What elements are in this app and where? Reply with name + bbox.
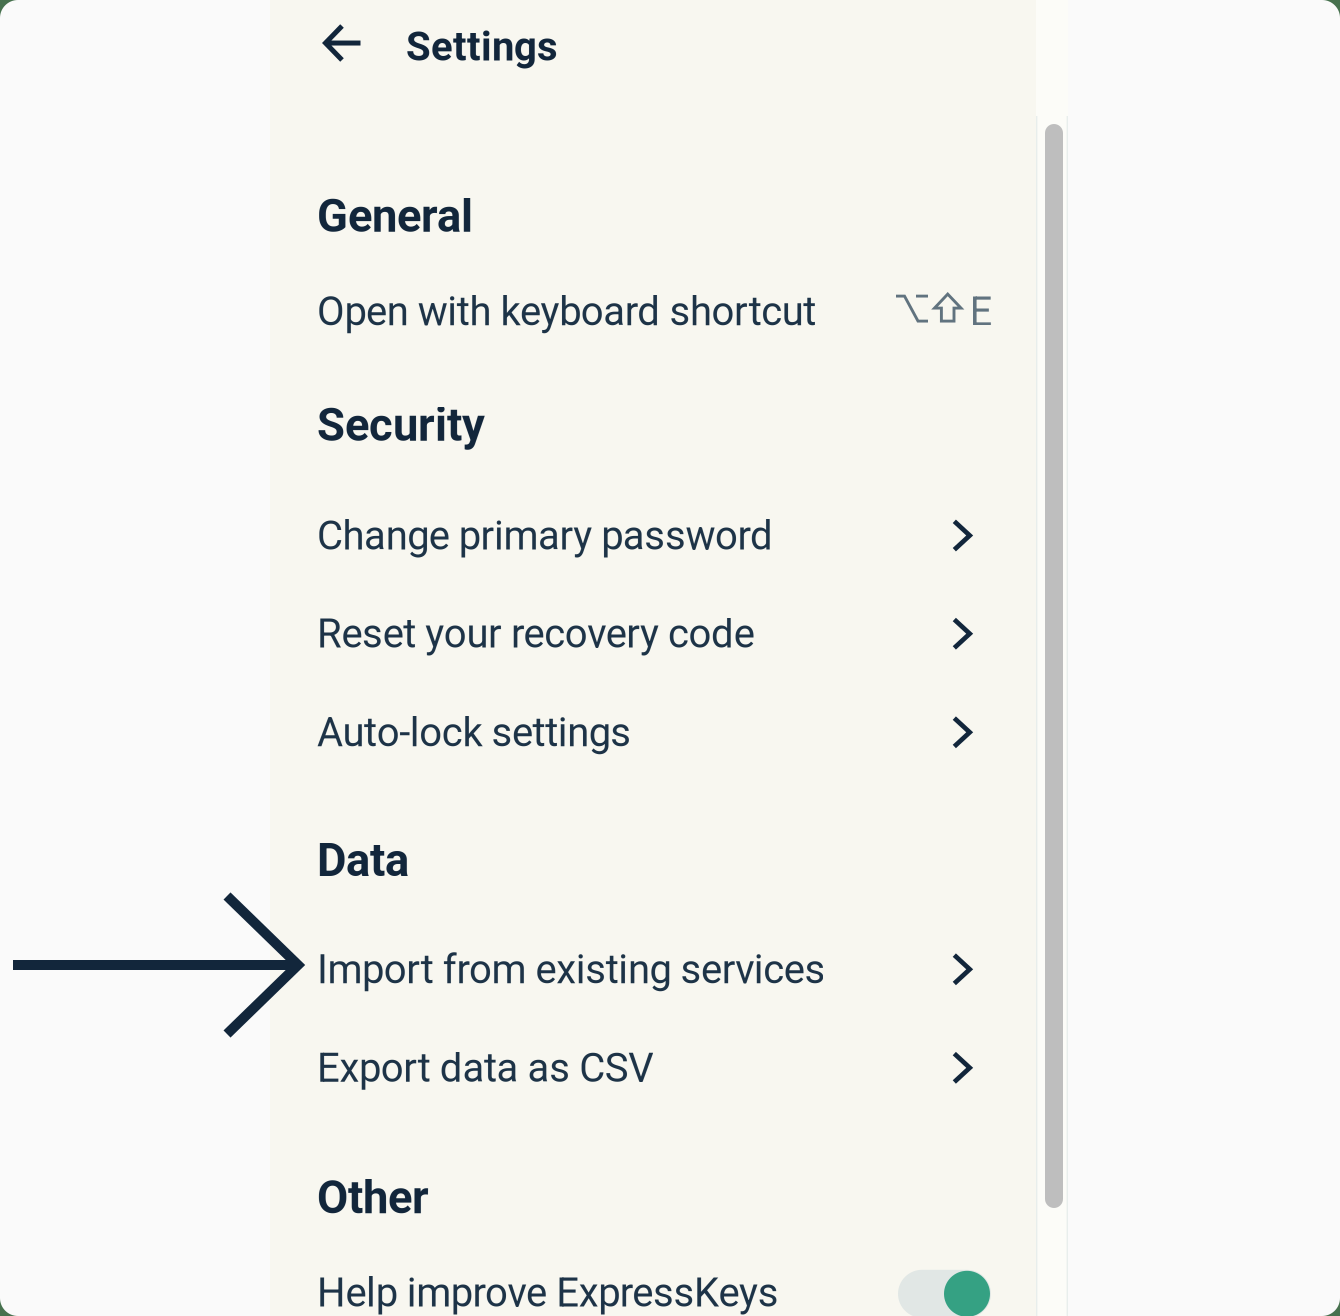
staticText: Auto-lock settings xyxy=(317,709,631,756)
staticText: E xyxy=(969,288,992,335)
button[interactable]: Import from existing services xyxy=(317,941,1036,999)
button[interactable]: Back xyxy=(323,25,362,62)
staticText: Export data as CSV xyxy=(317,1045,653,1091)
staticText: Security xyxy=(317,399,485,452)
button[interactable]: Auto-lock settings xyxy=(317,704,1036,762)
staticText: Change primary password xyxy=(317,512,773,559)
button[interactable]: Export data as CSV xyxy=(317,1039,1036,1097)
staticText: Other xyxy=(317,1171,429,1224)
button[interactable]: Help improve ExpressKeys xyxy=(317,1264,1036,1316)
staticText: Settings xyxy=(406,23,558,70)
button[interactable]: Open with keyboard shortcut xyxy=(317,283,1036,339)
staticText: Data xyxy=(317,834,409,887)
staticText: Import from existing services xyxy=(317,946,825,993)
staticText: Reset your recovery code xyxy=(317,610,755,657)
staticText: Help improve ExpressKeys xyxy=(317,1269,779,1316)
button[interactable]: Reset your recovery code xyxy=(317,605,1036,663)
staticText: General xyxy=(317,190,473,243)
staticText: Open with keyboard shortcut xyxy=(317,288,816,335)
button[interactable]: Change primary password xyxy=(317,507,1036,565)
button[interactable]: Help improve ExpressKeys xyxy=(898,1270,991,1316)
